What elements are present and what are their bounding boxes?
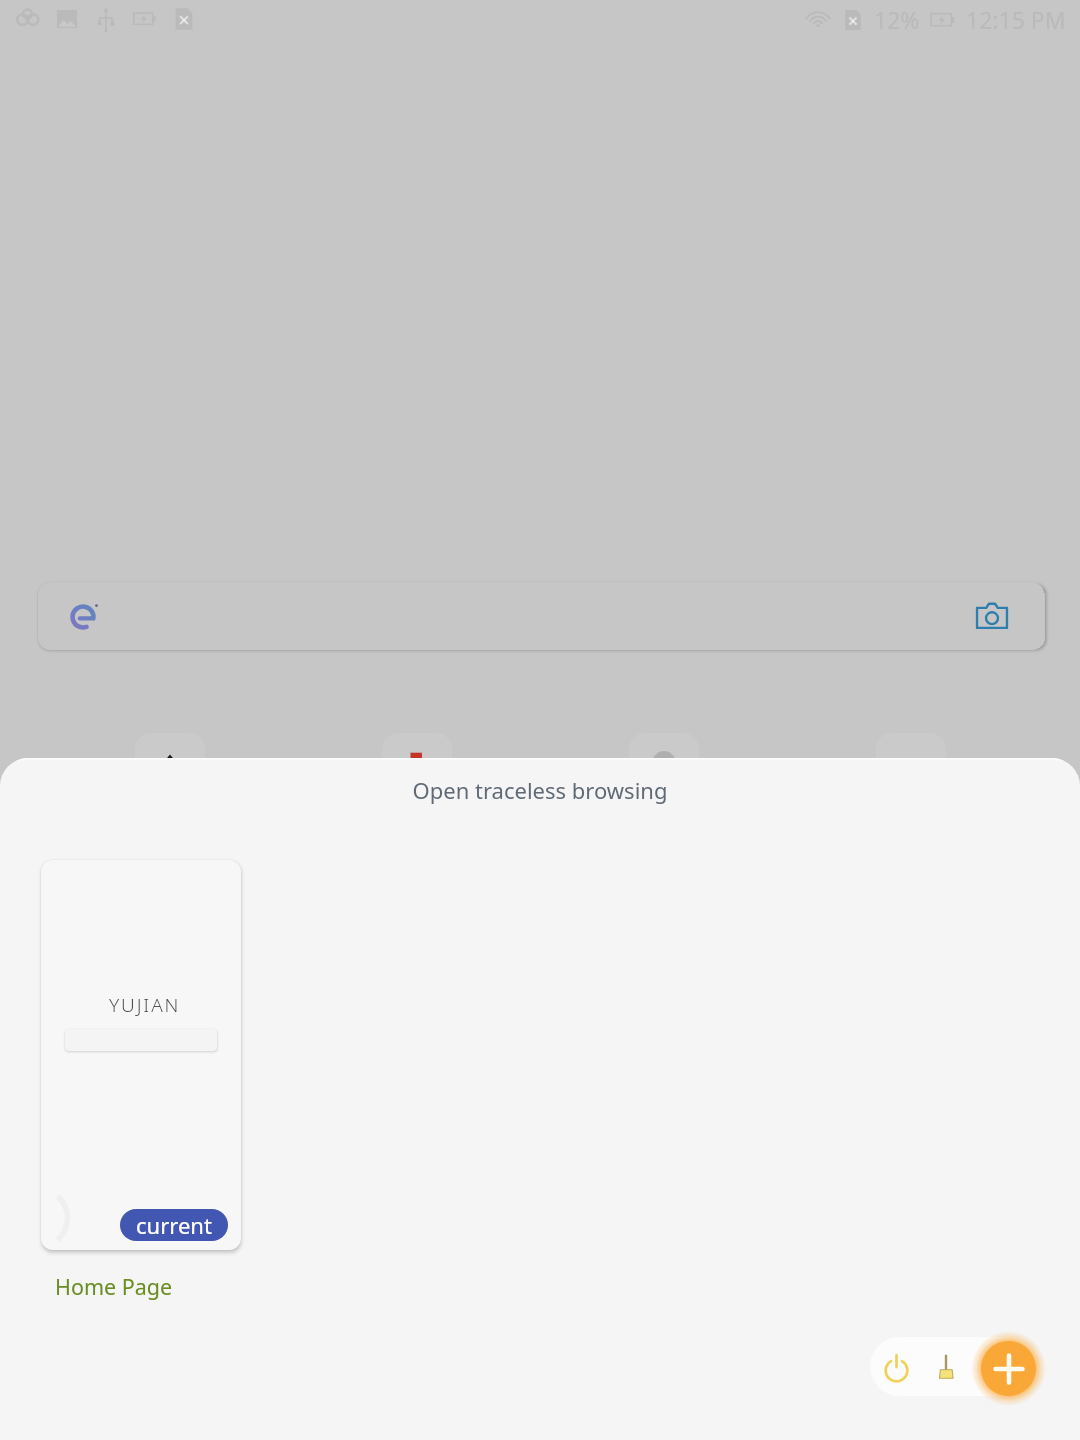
button[interactable]: New tab xyxy=(981,1341,1036,1396)
button[interactable]: YUJIAN xyxy=(41,860,241,1250)
staticText: Open traceless browsing xyxy=(0,775,1080,805)
button[interactable]: Shortcut 2 xyxy=(382,733,452,803)
button[interactable]: Shortcut 3 xyxy=(629,733,699,803)
button[interactable]: Clear traces xyxy=(923,1337,969,1396)
staticText: 12% xyxy=(874,4,920,35)
staticText: 12:15 PM xyxy=(966,4,1066,35)
button[interactable]: Home Page xyxy=(55,1272,173,1301)
staticText: current xyxy=(136,1210,212,1240)
button[interactable]: Search or type URL xyxy=(38,582,1044,650)
button[interactable]: Open traceless browsing xyxy=(0,758,1080,821)
button[interactable]: Shortcut 4 xyxy=(876,733,946,803)
button[interactable]: Camera search xyxy=(970,594,1014,638)
button[interactable]: current xyxy=(120,1209,228,1241)
button[interactable]: Shortcut 1 xyxy=(135,733,205,803)
button[interactable]: Close all tabs xyxy=(870,1337,923,1396)
staticText: YUJIAN xyxy=(109,992,181,1018)
